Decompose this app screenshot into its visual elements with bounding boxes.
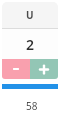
button[interactable]: Increase	[30, 59, 58, 79]
button[interactable]: Decrease	[2, 59, 30, 79]
staticText: U	[26, 8, 34, 22]
staticText: 2	[26, 35, 35, 54]
staticText: 58	[26, 99, 38, 111]
button[interactable]: U	[2, 2, 58, 28]
